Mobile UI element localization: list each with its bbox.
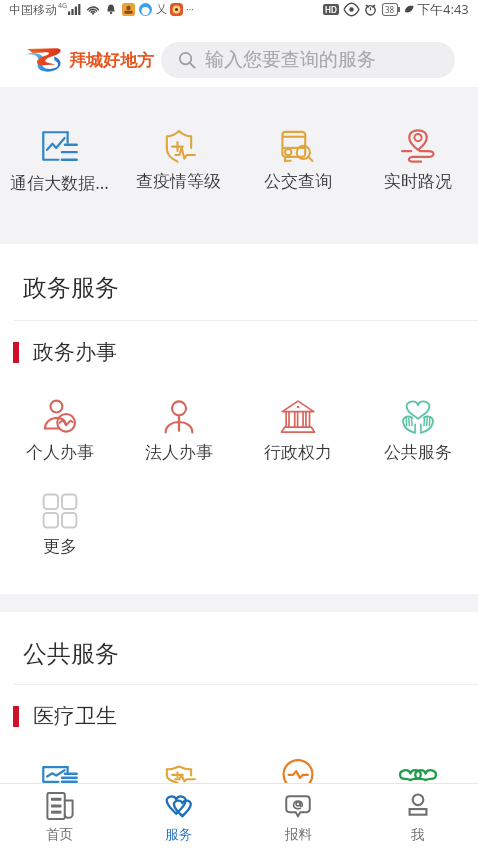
staticText: 报料	[285, 826, 312, 843]
staticText: 行政权力	[264, 442, 332, 463]
button[interactable]: 通信大数据...	[0, 130, 119, 194]
staticText: 更多	[43, 536, 77, 557]
staticText: 服务	[165, 826, 192, 843]
button[interactable]	[358, 766, 478, 783]
staticText: 首页	[46, 826, 73, 843]
staticText: 中国移动	[9, 2, 57, 17]
staticText: 乂	[156, 2, 167, 16]
button[interactable]: 报料	[238, 784, 358, 850]
button[interactable]	[119, 766, 238, 783]
staticText: 政务服务	[23, 273, 119, 303]
button[interactable]: 行政权力	[238, 399, 358, 463]
staticText: 政务办事	[33, 339, 117, 365]
staticText: 实时路况	[384, 171, 452, 192]
staticText: 下午4:43	[417, 0, 469, 18]
button[interactable]: 法人办事	[119, 399, 238, 463]
button[interactable]: 我	[358, 784, 478, 850]
staticText: 38	[385, 4, 395, 15]
staticText: 公共服务	[23, 639, 119, 669]
staticText: 公共服务	[384, 442, 452, 463]
button[interactable]: 服务	[119, 784, 238, 850]
staticText: 拜城好地方	[69, 50, 154, 71]
staticText: 公交查询	[264, 171, 332, 192]
staticText: 法人办事	[145, 442, 213, 463]
button[interactable]: 公共服务	[358, 399, 478, 463]
staticText: 我	[411, 826, 425, 843]
staticText: 查疫情等级	[136, 171, 221, 192]
staticText: 通信大数据...	[10, 171, 109, 194]
button[interactable]: 查疫情等级	[119, 130, 238, 192]
staticText: 医疗卫生	[33, 703, 117, 729]
button[interactable]: 公交查询	[238, 130, 358, 192]
button[interactable]: 更多	[0, 493, 119, 557]
button[interactable]: 首页	[0, 784, 119, 850]
button[interactable]	[238, 766, 358, 783]
staticText: HD	[325, 4, 337, 15]
button[interactable]: 实时路况	[358, 130, 478, 192]
button[interactable]: 输入您要查询的服务	[161, 42, 455, 78]
staticText: ···	[186, 2, 195, 16]
button[interactable]	[0, 766, 119, 783]
staticText: 输入您要查询的服务	[205, 48, 376, 72]
staticText: 4G	[58, 1, 68, 11]
staticText: 个人办事	[26, 442, 94, 463]
button[interactable]: 个人办事	[0, 399, 119, 463]
